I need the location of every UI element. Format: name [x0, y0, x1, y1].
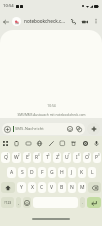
staticText: . [82, 200, 84, 206]
button[interactable]: D [28, 167, 36, 178]
staticText: W [14, 154, 19, 161]
staticText: L [91, 169, 94, 176]
staticText: M [80, 184, 85, 191]
button[interactable]: Backspace [88, 182, 101, 193]
button[interactable]: Clipboard [11, 138, 22, 149]
button[interactable]: Back [0, 16, 11, 27]
staticText: , [18, 200, 20, 206]
staticText: ?123 [4, 200, 12, 205]
staticText: A [10, 169, 14, 176]
button[interactable]: J [68, 167, 76, 178]
button[interactable]: O [83, 152, 91, 163]
button[interactable]: Shift [1, 182, 15, 193]
staticText: SMS-Nachricht [15, 126, 44, 132]
button[interactable]: V [48, 182, 56, 193]
staticText: Y [20, 184, 23, 191]
staticText: H [60, 169, 64, 176]
staticText: 4 [38, 153, 40, 157]
button[interactable]: Call [67, 16, 78, 27]
staticText: Z [56, 154, 59, 161]
staticText: U [65, 154, 69, 161]
button[interactable]: L [88, 167, 96, 178]
button[interactable]: Send [87, 123, 100, 135]
staticText: 8 [78, 153, 80, 157]
button[interactable]: Enter [87, 197, 101, 208]
staticText: F [41, 169, 44, 176]
button[interactable]: , [16, 197, 21, 208]
button[interactable]: I [73, 152, 81, 163]
staticText: G [50, 169, 54, 176]
staticText: E [26, 154, 29, 161]
button[interactable]: W [12, 152, 21, 163]
staticText: 9 [88, 153, 90, 157]
button[interactable]: SMS-Nachricht [2, 123, 85, 135]
staticText: I [76, 154, 78, 161]
button[interactable]: Video call [79, 16, 90, 27]
button[interactable]: H [58, 167, 66, 178]
staticText: SMS/MMS Austausch mit notebookcheck.com [17, 113, 86, 117]
button[interactable]: Y [17, 182, 26, 193]
staticText: 0 [98, 153, 100, 157]
staticText: P [95, 154, 99, 161]
button[interactable]: Stickers [57, 138, 68, 149]
button[interactable]: U [63, 152, 71, 163]
staticText: C [40, 184, 44, 191]
button[interactable]: Edit [46, 138, 57, 149]
button[interactable]: Q [1, 152, 10, 163]
staticText: notebookcheck.c… [24, 18, 67, 24]
staticText: X [31, 184, 34, 191]
button[interactable]: GIF [23, 138, 34, 149]
button[interactable]: More options [91, 16, 101, 26]
button[interactable]: Emoji [23, 197, 31, 208]
staticText: 3 [28, 153, 30, 157]
button[interactable]: ?123 [1, 197, 14, 208]
staticText: B [60, 184, 64, 191]
staticText: 7 [68, 153, 70, 157]
button[interactable]: . [80, 197, 85, 208]
staticText: O [85, 154, 89, 161]
staticText: 10:54 [47, 103, 56, 107]
button[interactable]: Theme [68, 138, 79, 149]
staticText: 6 [58, 153, 60, 157]
staticText: 2 [18, 153, 20, 157]
staticText: 10:54 [3, 3, 14, 9]
button[interactable]: R [33, 152, 41, 163]
button[interactable]: P [93, 152, 101, 163]
button[interactable]: M [78, 182, 86, 193]
button[interactable]: T [43, 152, 51, 163]
button[interactable]: E [23, 152, 31, 163]
button[interactable]: X [28, 182, 36, 193]
staticText: 1 [7, 153, 9, 157]
button[interactable]: Voice input [91, 138, 102, 149]
staticText: S [21, 169, 24, 176]
button[interactable]: A [7, 167, 16, 178]
button[interactable]: G [48, 167, 56, 178]
button[interactable]: Translate [34, 138, 45, 149]
button[interactable]: Modes [0, 138, 11, 149]
button[interactable]: S [18, 167, 26, 178]
staticText: V [50, 184, 54, 191]
staticText: 5 [48, 153, 50, 157]
button[interactable]: K [78, 167, 86, 178]
staticText: D [30, 169, 34, 176]
button[interactable]: C [38, 182, 46, 193]
button[interactable]: Z [53, 152, 61, 163]
staticText: N [70, 184, 74, 191]
button[interactable]: B [58, 182, 66, 193]
staticText: J [71, 169, 73, 176]
button[interactable]: N [68, 182, 76, 193]
button[interactable]: Settings [80, 138, 91, 149]
button[interactable]: F [38, 167, 46, 178]
staticText: K [80, 169, 84, 176]
staticText: T [46, 154, 49, 161]
staticText: R [35, 154, 39, 161]
staticText: Q [4, 154, 8, 161]
